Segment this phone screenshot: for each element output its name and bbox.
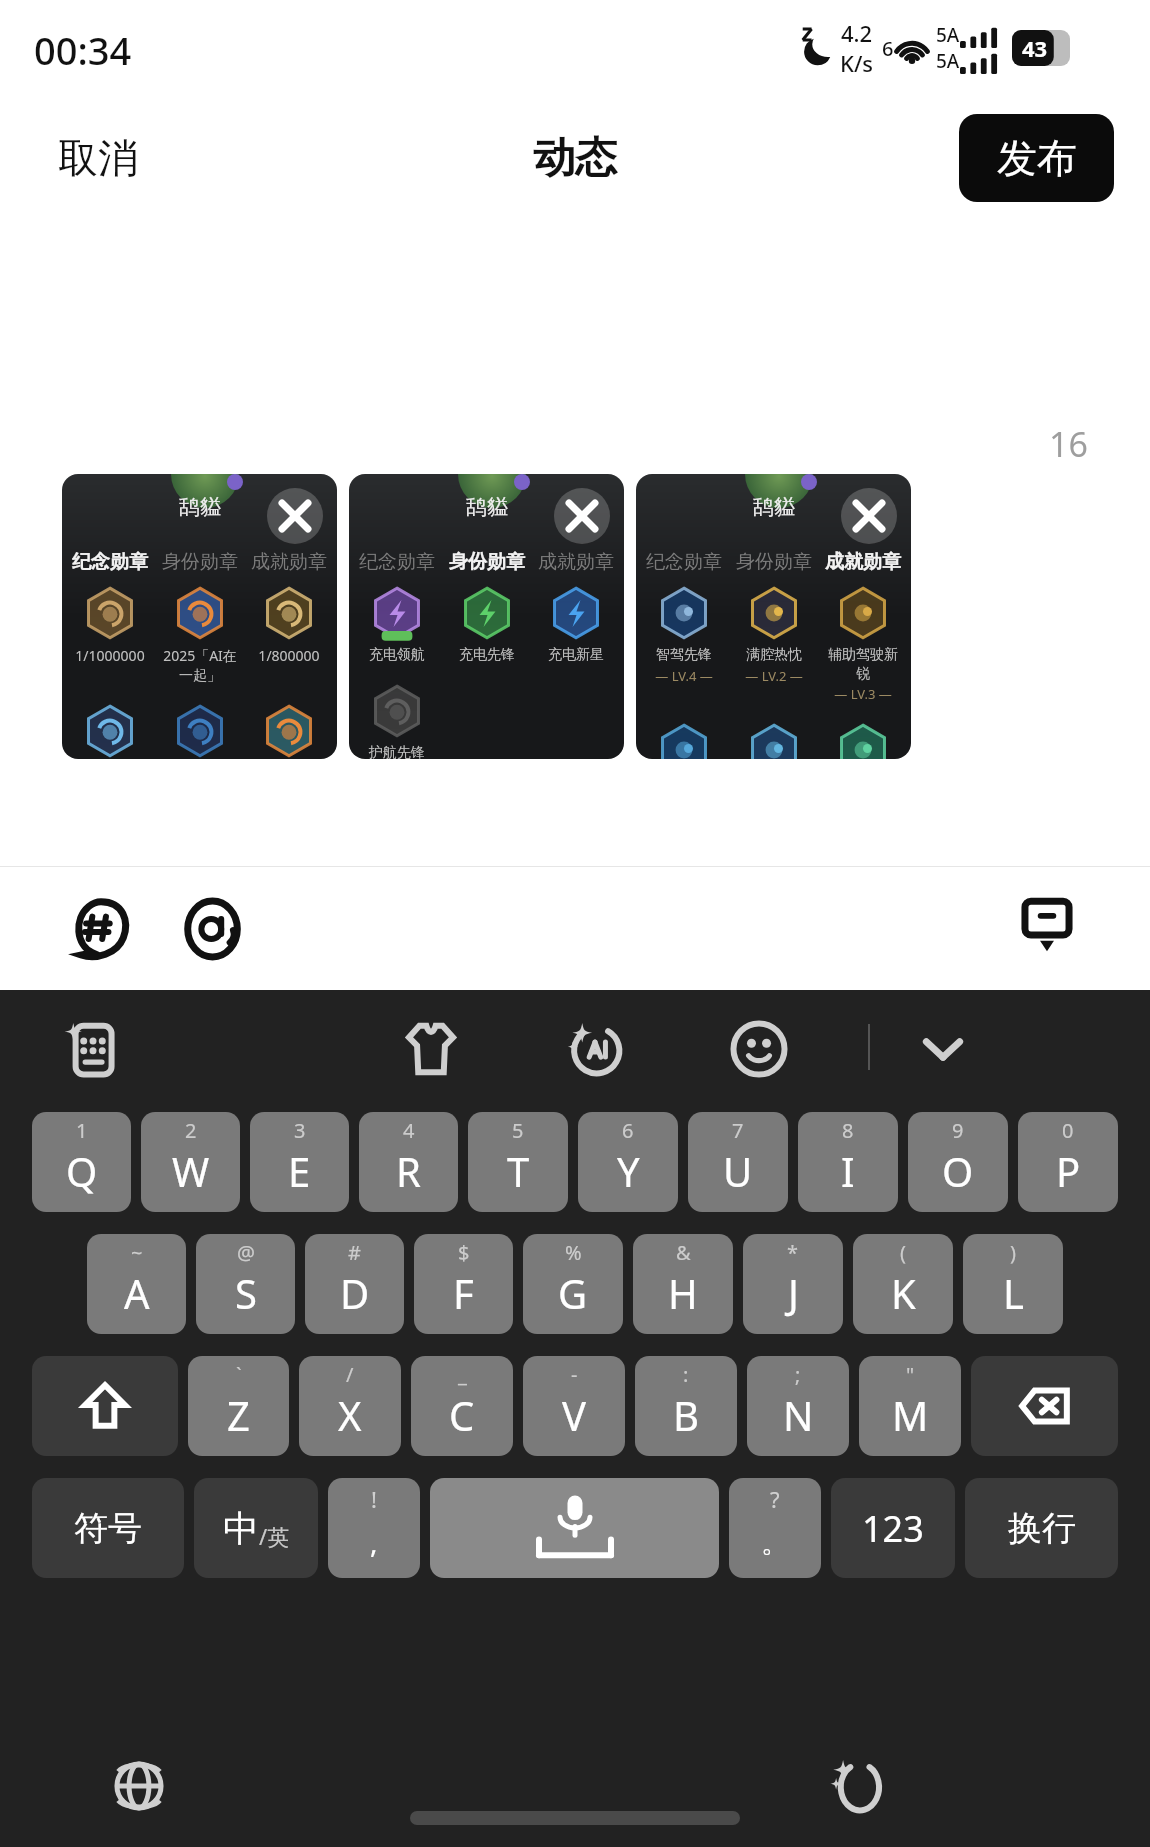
staticText: — LV.2 — (745, 667, 803, 685)
button[interactable]: ! (328, 1478, 420, 1578)
button[interactable]: 1/1000000 (69, 586, 151, 665)
button[interactable]: Topic (66, 894, 136, 964)
button[interactable]: Close (267, 488, 323, 544)
button[interactable]: 守护蓝天 (643, 723, 725, 759)
button[interactable]: ( (853, 1234, 953, 1334)
button[interactable]: / (299, 1356, 401, 1456)
button[interactable]: # (305, 1234, 404, 1334)
button[interactable]: ? (729, 1478, 821, 1578)
button[interactable]: 123 (831, 1478, 955, 1578)
button[interactable]: 发布 (959, 114, 1114, 202)
button[interactable] (159, 704, 241, 759)
button[interactable]: 身份勋章 (732, 546, 816, 578)
staticText: ` (236, 1361, 242, 1388)
button[interactable]: 4 (359, 1112, 458, 1212)
button[interactable]: % (523, 1234, 623, 1334)
button[interactable]: Space (430, 1478, 719, 1578)
button[interactable]: 取消 (40, 121, 156, 195)
staticText: 成就勋章 (251, 550, 327, 574)
button[interactable]: 中 (194, 1478, 318, 1578)
button[interactable]: 9 (908, 1112, 1008, 1212)
button[interactable]: " (859, 1356, 961, 1456)
button[interactable]: 成就勋章 (534, 546, 618, 578)
button[interactable]: 成就勋章 (247, 546, 331, 578)
button[interactable]: 纪念勋章 (68, 546, 152, 578)
button[interactable]: _ (411, 1356, 513, 1456)
button[interactable]: 7 (688, 1112, 788, 1212)
button[interactable]: Mention (180, 894, 250, 964)
button[interactable]: 身份勋章 (158, 546, 242, 578)
button[interactable]: 8 (798, 1112, 898, 1212)
button[interactable]: ` (188, 1356, 289, 1456)
button[interactable]: & (633, 1234, 733, 1334)
button[interactable]: AI refresh (824, 1753, 890, 1819)
staticText: 3 (294, 1117, 306, 1144)
button[interactable]: * (743, 1234, 843, 1334)
button[interactable]: 妙语连珠 (733, 723, 815, 759)
button[interactable] (69, 704, 151, 759)
button[interactable]: @ (196, 1234, 295, 1334)
button[interactable]: 1/800000 (248, 586, 330, 665)
button[interactable]: 5 (468, 1112, 568, 1212)
button[interactable]: - (523, 1356, 625, 1456)
button[interactable]: 辅助驾驶新锐 (822, 586, 904, 703)
button[interactable]: 身份勋章 (445, 546, 529, 578)
button[interactable]: 鸹貖 (636, 474, 911, 759)
staticText: ? (770, 1484, 780, 1514)
button[interactable]: Backspace (971, 1356, 1118, 1456)
button[interactable]: 充电领航 (356, 586, 438, 664)
button[interactable]: 换行 (965, 1478, 1118, 1578)
staticText: 鸹貖 (466, 494, 508, 520)
staticText: 纪念勋章 (72, 550, 148, 574)
button[interactable]: $ (414, 1234, 513, 1334)
button[interactable]: 2 (141, 1112, 240, 1212)
staticText: 纪念勋章 (359, 550, 435, 574)
button[interactable]: Shift (32, 1356, 178, 1456)
button[interactable]: 满腔热忱 (733, 586, 815, 685)
button[interactable]: 0 (1018, 1112, 1118, 1212)
staticText: U (723, 1144, 753, 1198)
staticText: ) (1010, 1239, 1016, 1266)
button[interactable]: Language (106, 1753, 172, 1819)
staticText: 智驾先锋 (656, 646, 712, 664)
button[interactable]: 3 (250, 1112, 349, 1212)
button[interactable]: ) (963, 1234, 1063, 1334)
button[interactable]: 充电先锋 (446, 586, 528, 664)
button[interactable]: 护航先锋 (356, 684, 438, 759)
button[interactable]: Skin (398, 1016, 464, 1082)
button[interactable]: : (635, 1356, 737, 1456)
staticText: R (396, 1144, 421, 1198)
button[interactable]: 智驾先锋 (643, 586, 725, 685)
button[interactable]: Keyboard settings (60, 1016, 126, 1082)
staticText: : (683, 1361, 689, 1388)
button[interactable]: Close (841, 488, 897, 544)
button[interactable]: 纪念勋章 (355, 546, 439, 578)
staticText: 充电先锋 (459, 646, 515, 664)
button[interactable]: 1 (32, 1112, 131, 1212)
staticText: V (562, 1388, 586, 1442)
button[interactable]: 鸹貖 (62, 474, 337, 759)
button[interactable] (248, 704, 330, 759)
button[interactable]: 纪念勋章 (642, 546, 726, 578)
button[interactable]: ; (747, 1356, 849, 1456)
staticText: 0 (1062, 1117, 1074, 1144)
button[interactable]: 6 (578, 1112, 678, 1212)
staticText: — LV.3 — (834, 685, 892, 703)
button[interactable]: 鸹貖 (349, 474, 624, 759)
staticText: % (565, 1239, 582, 1266)
button[interactable]: Collapse keyboard (910, 1016, 976, 1082)
staticText: M (892, 1388, 929, 1442)
button[interactable]: ~ (87, 1234, 186, 1334)
button[interactable]: 符号 (32, 1478, 184, 1578)
button[interactable]: 成就勋章 (821, 546, 905, 578)
button[interactable]: Hide keyboard (1012, 893, 1082, 963)
button[interactable]: 泊车大神 (822, 723, 904, 759)
button[interactable]: 2025「AI在一起」 (159, 586, 241, 684)
button[interactable]: Emoji (726, 1016, 792, 1082)
button[interactable]: AI (562, 1016, 628, 1082)
button[interactable]: 充电新星 (535, 586, 617, 664)
staticText: 辅助驾驶新锐 (822, 646, 904, 682)
button[interactable]: Close (554, 488, 610, 544)
